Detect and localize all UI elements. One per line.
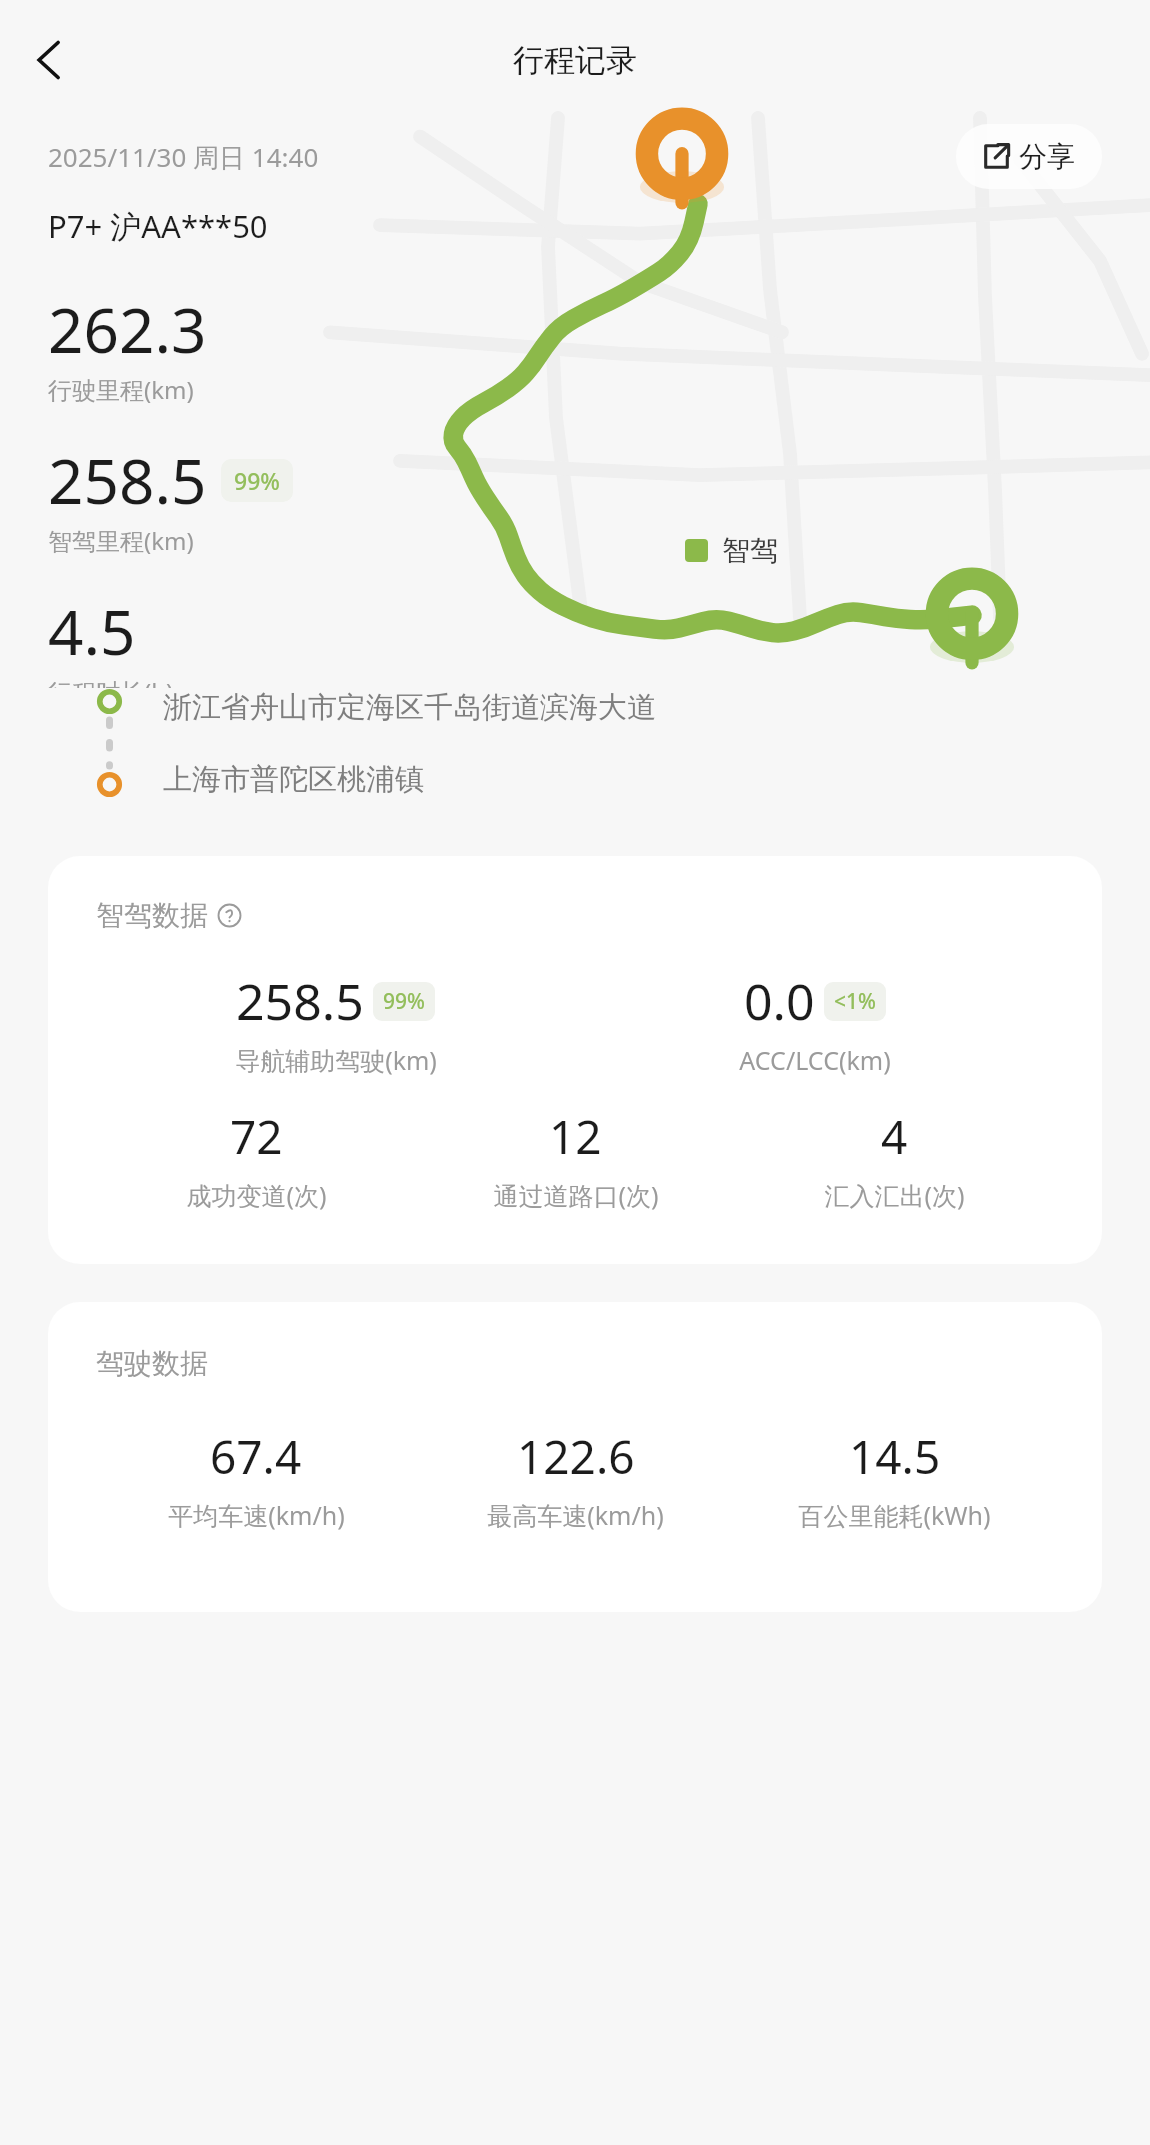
staticText: 最高车速(km/h) — [487, 1498, 664, 1532]
staticText: 12 — [549, 1105, 602, 1168]
button[interactable]: 驾驶数据 — [48, 1302, 1102, 1612]
staticText: 258.5 — [48, 438, 207, 522]
staticText: 平均车速(km/h) — [168, 1498, 345, 1532]
staticText: 驾驶数据 — [96, 1346, 208, 1381]
staticText: <1% — [834, 987, 876, 1016]
staticText: ACC/LCC(km) — [739, 1043, 891, 1077]
staticText: 14.5 — [849, 1425, 941, 1488]
staticText: 上海市普陀区桃浦镇 — [163, 761, 424, 798]
staticText: 4.5 — [48, 589, 136, 673]
staticText: 百公里能耗(kWh) — [798, 1498, 991, 1532]
button[interactable]: Back — [6, 17, 92, 103]
staticText: 智驾 — [722, 533, 778, 568]
staticText: 262.3 — [48, 287, 207, 371]
staticText: 行程记录 — [513, 41, 637, 80]
staticText: 行程时长(h) — [48, 675, 174, 688]
staticText: 导航辅助驾驶(km) — [235, 1043, 437, 1077]
staticText: 99% — [383, 987, 425, 1016]
staticText: 72 — [230, 1105, 283, 1168]
staticText: 智驾数据 — [96, 898, 208, 933]
staticText: 浙江省舟山市定海区千岛街道滨海大道 — [163, 689, 656, 726]
staticText: 4 — [881, 1105, 908, 1168]
staticText: 258.5 — [236, 967, 364, 1035]
staticText: 通过道路口(次) — [493, 1178, 659, 1212]
staticText: 汇入汇出(次) — [824, 1178, 965, 1212]
staticText: 99% — [234, 465, 280, 496]
staticText: 67.4 — [210, 1425, 302, 1488]
staticText: 122.6 — [517, 1425, 635, 1488]
staticText: 分享 — [1019, 139, 1075, 174]
staticText: 0.0 — [744, 967, 815, 1035]
staticText: 成功变道(次) — [186, 1178, 327, 1212]
staticText: 行驶里程(km) — [48, 373, 194, 406]
staticText: 2025/11/30 周日 14:40 — [48, 139, 319, 175]
staticText: P7+ 沪AA***50 — [48, 205, 268, 247]
staticText: 智驾里程(km) — [48, 524, 194, 557]
button[interactable]: 分享 — [956, 124, 1102, 189]
button[interactable]: 智驾数据 — [48, 856, 1102, 1264]
